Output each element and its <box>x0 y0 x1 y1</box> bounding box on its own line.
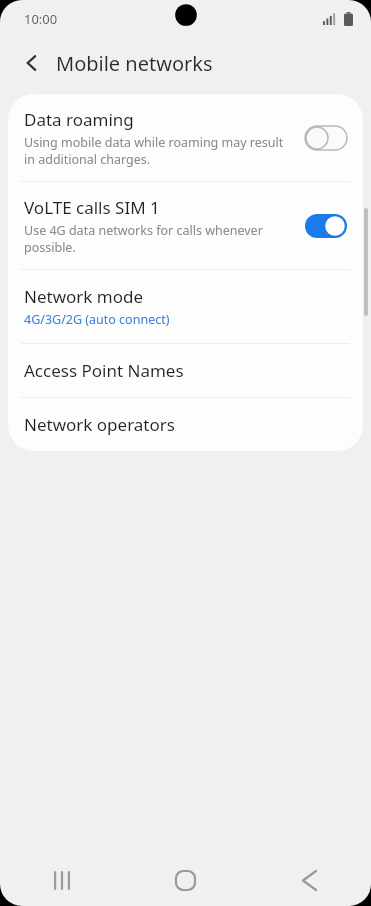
button[interactable]: Back <box>12 43 52 83</box>
staticText: Access Point Names <box>24 359 184 382</box>
button[interactable]: Recents <box>0 854 123 906</box>
button[interactable]: Off <box>305 126 347 150</box>
button[interactable]: On <box>305 214 347 238</box>
staticText: 4G/3G/2G (auto connect) <box>24 311 170 328</box>
staticText: Use 4G data networks for calls whenever … <box>24 222 263 255</box>
button[interactable]: Network mode <box>8 270 363 343</box>
staticText: Network mode <box>24 285 144 308</box>
button[interactable]: Network operators <box>8 398 363 451</box>
button[interactable]: Home <box>123 854 247 906</box>
button[interactable]: Data roaming <box>8 94 363 181</box>
staticText: Using mobile data while roaming may resu… <box>24 134 284 167</box>
staticText: 10:00 <box>24 10 58 28</box>
staticText: Network operators <box>24 413 175 436</box>
button[interactable]: VoLTE calls SIM 1 <box>8 182 363 269</box>
staticText: Mobile networks <box>56 50 213 77</box>
staticText: Data roaming <box>24 108 134 131</box>
button[interactable]: Back <box>247 854 371 906</box>
button[interactable]: Access Point Names <box>8 344 363 397</box>
staticText: VoLTE calls SIM 1 <box>24 196 160 219</box>
